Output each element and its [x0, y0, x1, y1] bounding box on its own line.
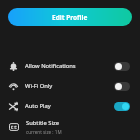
button[interactable]: Notifications — [0, 56, 140, 76]
other: Auto Play — [9, 102, 18, 111]
button[interactable]: Edit Profile — [8, 8, 132, 26]
button[interactable]: Toggle — [114, 102, 130, 111]
button[interactable]: Wi-Fi — [0, 76, 140, 96]
other: Subtitle Size — [9, 122, 19, 132]
staticText: Wi-Fi Only — [25, 82, 110, 90]
button[interactable]: Toggle — [114, 82, 130, 91]
button[interactable]: Subtitle Size — [0, 116, 140, 138]
staticText: Edit Profile — [52, 13, 88, 22]
other: Notifications — [9, 62, 18, 71]
staticText: Auto Play — [25, 102, 110, 110]
staticText: Allow Notifications — [25, 62, 110, 70]
staticText: Subtitle Size — [26, 119, 59, 127]
other: Wi-Fi — [9, 82, 18, 91]
staticText: current size : 1M — [26, 129, 62, 135]
button[interactable]: Auto Play — [0, 96, 140, 116]
button[interactable]: Toggle — [114, 62, 130, 71]
